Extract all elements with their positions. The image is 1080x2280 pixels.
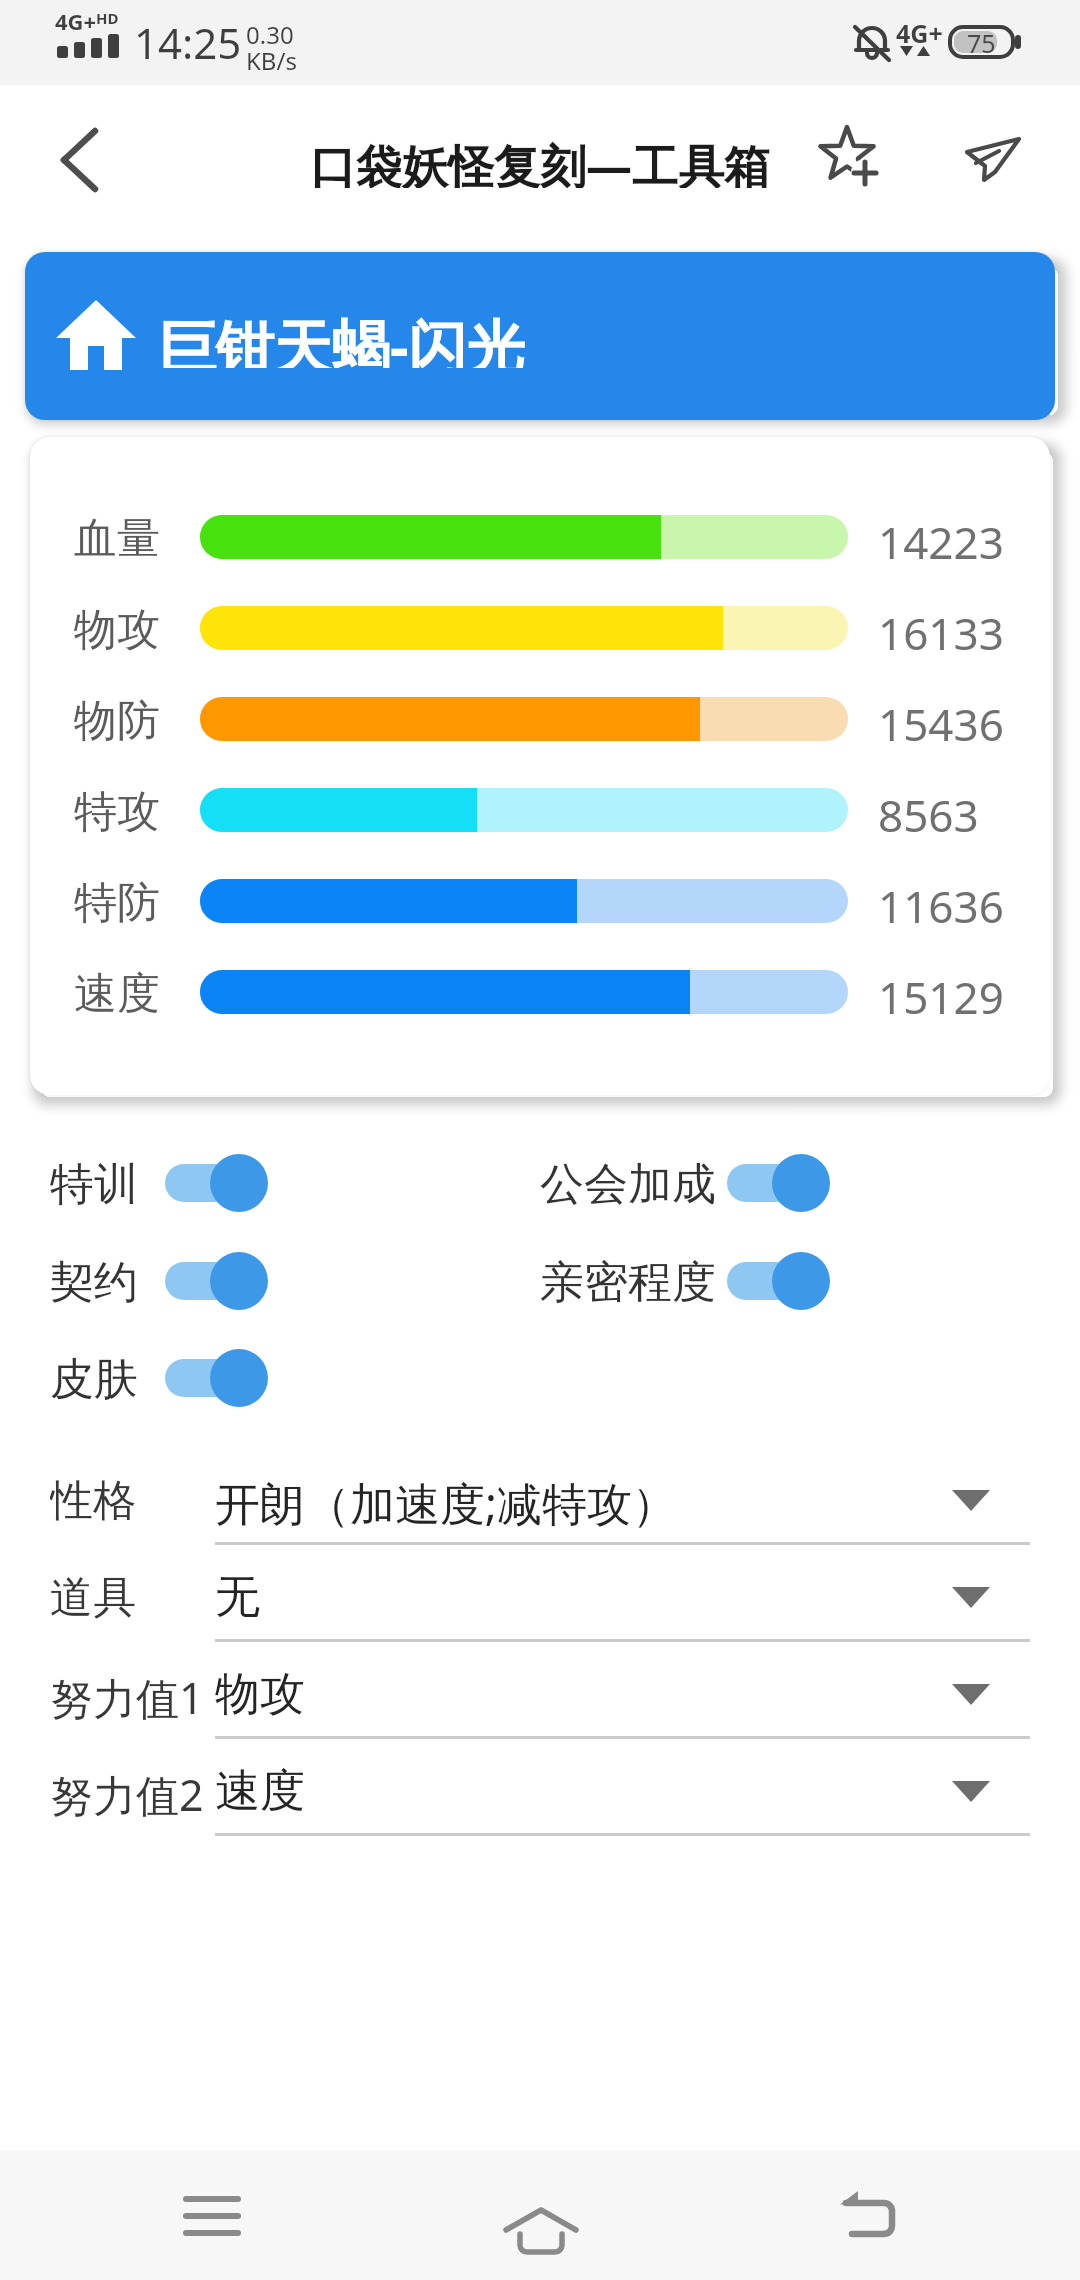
staticText: 特训 bbox=[50, 1157, 138, 1209]
staticText: 无 bbox=[215, 1569, 260, 1625]
staticText: HD bbox=[96, 8, 119, 28]
staticText: 口袋妖怪复刻—工具箱 bbox=[310, 134, 770, 188]
staticText: 努力值1 bbox=[50, 1668, 204, 1720]
staticText: 亲密程度 bbox=[540, 1255, 716, 1307]
button[interactable] bbox=[160, 2165, 264, 2269]
staticText: 15436 bbox=[878, 694, 1004, 744]
button[interactable]: 努力值2 bbox=[30, 1743, 1050, 1840]
button[interactable]: 道具 bbox=[30, 1549, 1050, 1646]
button[interactable] bbox=[958, 128, 1026, 190]
button[interactable]: 努力值1 bbox=[30, 1646, 1050, 1743]
staticText: 0.30 bbox=[246, 18, 294, 44]
staticText: 物防 bbox=[74, 694, 160, 744]
staticText: 道具 bbox=[50, 1571, 136, 1623]
staticText: 16133 bbox=[878, 603, 1004, 653]
staticText: 14223 bbox=[878, 512, 1004, 562]
staticText: 物攻 bbox=[215, 1666, 305, 1722]
staticText: 皮肤 bbox=[50, 1352, 138, 1404]
staticText: 特攻 bbox=[74, 785, 160, 835]
button[interactable] bbox=[814, 122, 882, 192]
staticText: 14:25 bbox=[134, 14, 242, 70]
button[interactable] bbox=[165, 1252, 268, 1310]
staticText: 特防 bbox=[74, 876, 160, 926]
staticText: 契约 bbox=[50, 1255, 138, 1307]
button[interactable]: 巨钳天蝎-闪光 bbox=[25, 252, 1055, 420]
button[interactable]: 性格 bbox=[30, 1452, 1050, 1549]
button[interactable] bbox=[489, 2165, 593, 2269]
button[interactable] bbox=[727, 1252, 830, 1310]
staticText: 4G+ bbox=[55, 6, 97, 32]
staticText: 4G+ bbox=[896, 16, 943, 44]
staticText: 公会加成 bbox=[540, 1157, 716, 1209]
staticText: 血量 bbox=[74, 512, 160, 562]
staticText: 巨钳天蝎-闪光 bbox=[158, 306, 525, 368]
staticText: KB/s bbox=[246, 44, 297, 70]
staticText: 物攻 bbox=[74, 603, 160, 653]
staticText: 75 bbox=[967, 26, 996, 60]
staticText: 速度 bbox=[74, 967, 160, 1017]
staticText: 开朗（加速度;减特攻） bbox=[215, 1472, 678, 1528]
staticText: 努力值2 bbox=[50, 1765, 204, 1817]
button[interactable] bbox=[727, 1154, 830, 1212]
staticText: 性格 bbox=[50, 1474, 136, 1526]
button[interactable] bbox=[818, 2165, 922, 2269]
staticText: 速度 bbox=[215, 1763, 305, 1819]
staticText: 15129 bbox=[878, 967, 1004, 1017]
button[interactable] bbox=[55, 125, 115, 195]
staticText: 8563 bbox=[878, 785, 979, 835]
button[interactable] bbox=[165, 1349, 268, 1407]
button[interactable] bbox=[165, 1154, 268, 1212]
staticText: 11636 bbox=[878, 876, 1004, 926]
